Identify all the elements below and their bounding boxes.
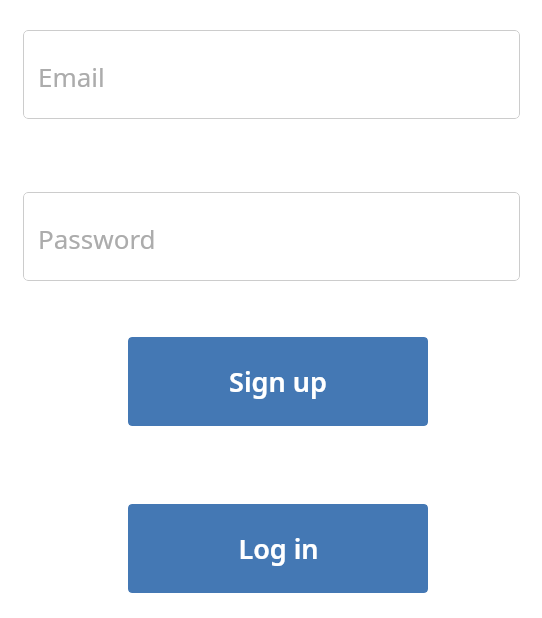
staticText: Sign up: [229, 363, 327, 400]
button[interactable]: Sign up: [128, 337, 428, 426]
staticText: Password: [38, 221, 156, 256]
staticText: Email: [38, 59, 105, 94]
button[interactable]: Email: [23, 30, 520, 119]
button[interactable]: Password: [23, 192, 520, 281]
button[interactable]: Log in: [128, 504, 428, 593]
staticText: Log in: [238, 530, 319, 567]
